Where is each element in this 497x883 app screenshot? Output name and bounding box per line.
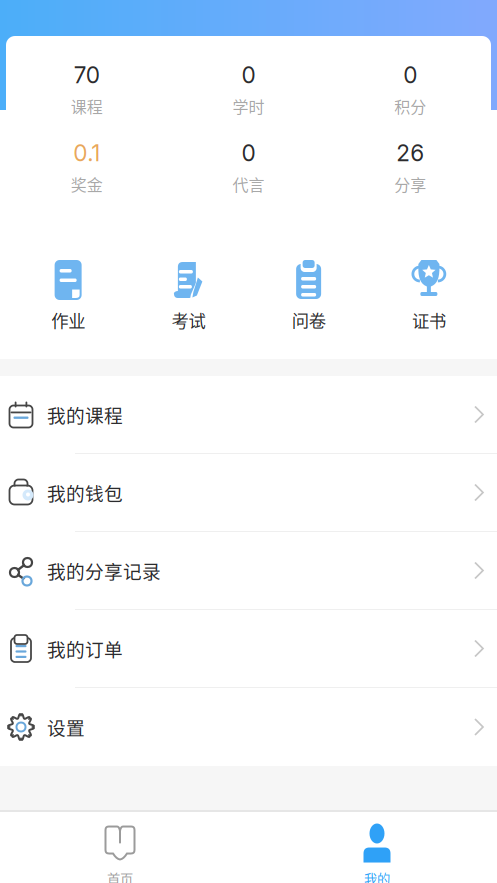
button[interactable]: 我的订单 [0, 610, 497, 688]
button[interactable]: 设置 [0, 688, 497, 766]
staticText: 分享 [394, 172, 426, 196]
button[interactable]: 证书 [369, 260, 489, 328]
staticText: 70 [74, 61, 100, 89]
button[interactable]: 我的钱包 [0, 454, 497, 532]
staticText: 考试 [171, 307, 205, 333]
staticText: 课程 [71, 94, 103, 118]
button[interactable]: 我的课程 [0, 376, 497, 454]
button[interactable]: 我的 [257, 812, 497, 883]
staticText: 26 [396, 139, 424, 167]
staticText: 0.1 [73, 139, 100, 167]
staticText: 0 [241, 61, 255, 89]
staticText: 我的钱包 [47, 479, 123, 506]
staticText: 奖金 [71, 172, 103, 196]
staticText: 我的分享记录 [47, 557, 161, 584]
staticText: 我的课程 [47, 401, 123, 428]
staticText: 代言 [232, 172, 264, 196]
staticText: 证书 [412, 307, 446, 333]
button[interactable]: 首页 [0, 812, 240, 883]
staticText: 我的 [364, 869, 390, 883]
staticText: 0 [241, 139, 255, 167]
button[interactable]: 作业 [8, 260, 128, 328]
staticText: 学时 [232, 94, 264, 118]
staticText: 首页 [107, 869, 133, 883]
staticText: 设置 [47, 713, 85, 740]
staticText: 积分 [394, 94, 426, 118]
staticText: 0 [403, 61, 417, 89]
button[interactable]: 考试 [128, 260, 248, 328]
staticText: 作业 [51, 307, 85, 333]
button[interactable]: 问卷 [248, 260, 369, 328]
button[interactable]: 我的分享记录 [0, 532, 497, 610]
staticText: 问卷 [292, 307, 326, 333]
staticText: 我的订单 [47, 635, 123, 662]
